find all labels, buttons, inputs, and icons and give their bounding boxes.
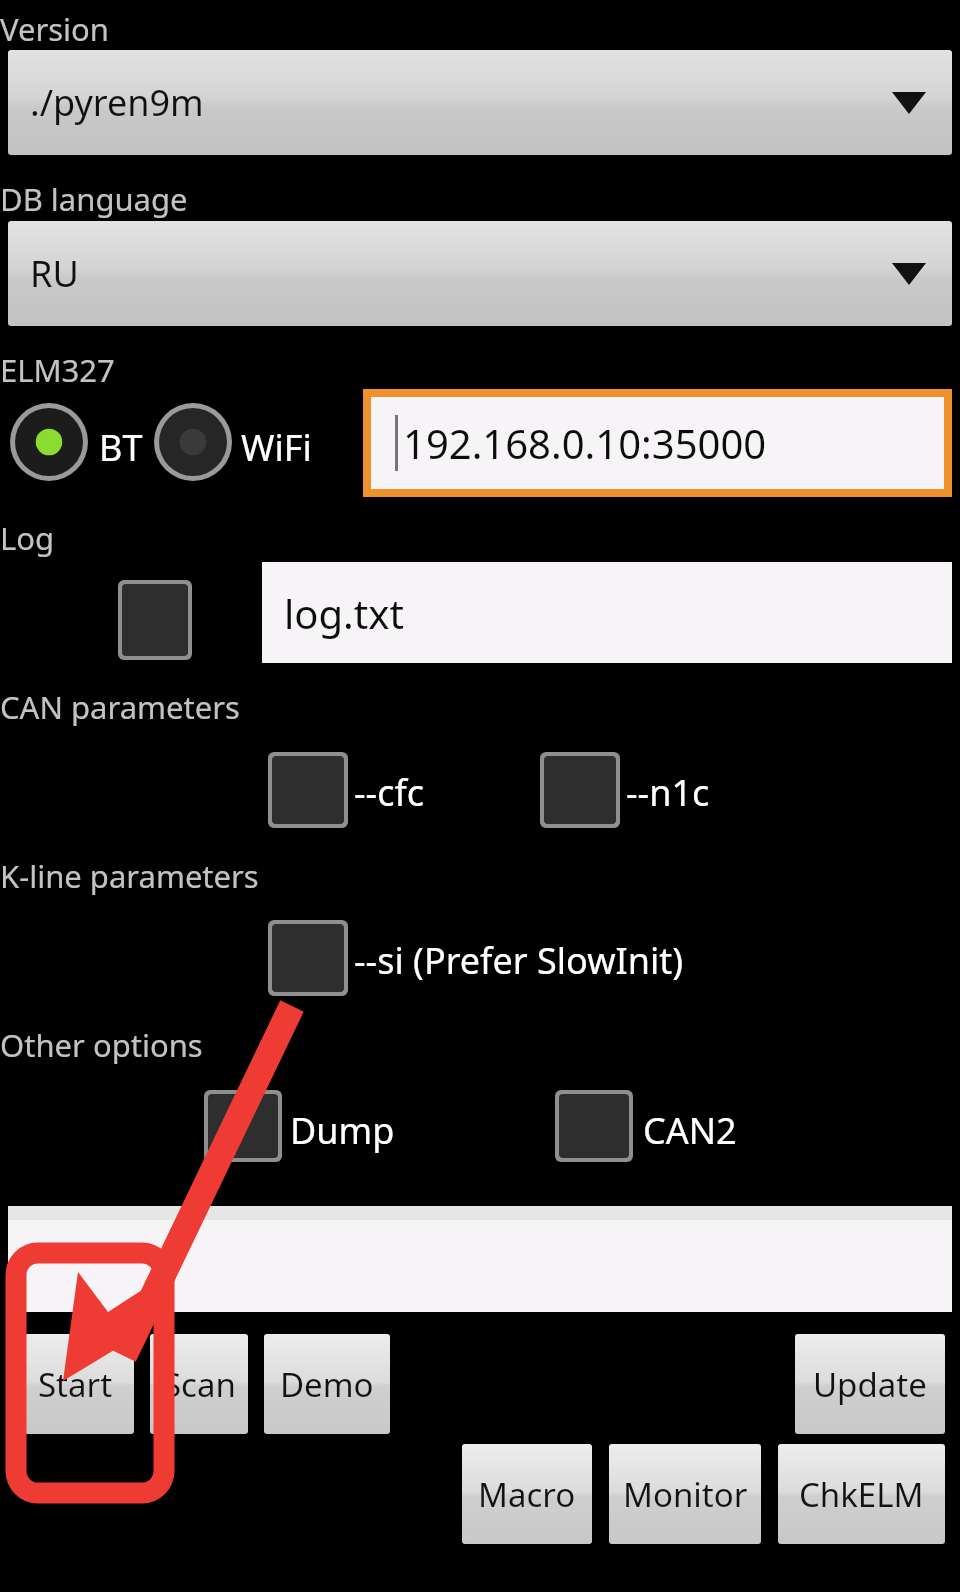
staticText: Demo <box>280 1362 374 1407</box>
button[interactable]: 192.168.0.10:35000 <box>363 389 952 497</box>
button[interactable]: n1c <box>540 752 620 828</box>
staticText: Other options <box>0 1024 203 1066</box>
staticText: RU <box>30 249 79 298</box>
button[interactable]: Scan <box>150 1334 248 1434</box>
staticText: DB language <box>0 178 188 220</box>
staticText: BT <box>99 423 143 472</box>
staticText: 192.168.0.10:35000 <box>403 416 767 470</box>
button[interactable]: ChkELM <box>778 1444 945 1544</box>
staticText: Scan <box>163 1362 236 1407</box>
staticText: CAN2 <box>643 1106 737 1155</box>
button[interactable]: CAN2 <box>555 1090 633 1162</box>
staticText: --cfc <box>354 768 425 817</box>
button[interactable]: Monitor <box>609 1444 761 1544</box>
button[interactable]: Bluetooth <box>10 403 88 481</box>
staticText: Monitor <box>623 1472 748 1517</box>
staticText: Update <box>813 1362 927 1407</box>
staticText: log.txt <box>284 586 404 640</box>
staticText: --si (Prefer SlowInit) <box>354 936 683 985</box>
staticText: CAN parameters <box>0 686 240 728</box>
staticText: Log <box>0 517 55 559</box>
staticText: Macro <box>478 1472 576 1517</box>
button[interactable]: Dump <box>204 1090 282 1162</box>
button[interactable]: Demo <box>264 1334 390 1434</box>
staticText: K-line parameters <box>0 855 259 897</box>
staticText: ./pyren9m <box>30 78 204 127</box>
button[interactable]: log.txt <box>262 562 952 663</box>
staticText: Start <box>38 1362 113 1407</box>
staticText: Version <box>0 8 110 50</box>
staticText: ChkELM <box>799 1472 924 1517</box>
staticText: --n1c <box>626 768 710 817</box>
button[interactable]: cfc <box>268 752 348 828</box>
button[interactable]: Macro <box>462 1444 592 1544</box>
button[interactable]: RU <box>8 221 952 326</box>
button[interactable]: ./pyren9m <box>8 50 952 155</box>
staticText: ELM327 <box>0 349 115 391</box>
button[interactable]: Enable log <box>118 580 192 660</box>
button[interactable]: si Prefer SlowInit <box>268 920 348 996</box>
staticText: Dump <box>290 1106 395 1155</box>
button[interactable]: WiFi <box>154 403 232 481</box>
button[interactable]: Update <box>795 1334 945 1434</box>
button[interactable]: Start <box>16 1334 134 1434</box>
staticText: WiFi <box>241 423 312 472</box>
